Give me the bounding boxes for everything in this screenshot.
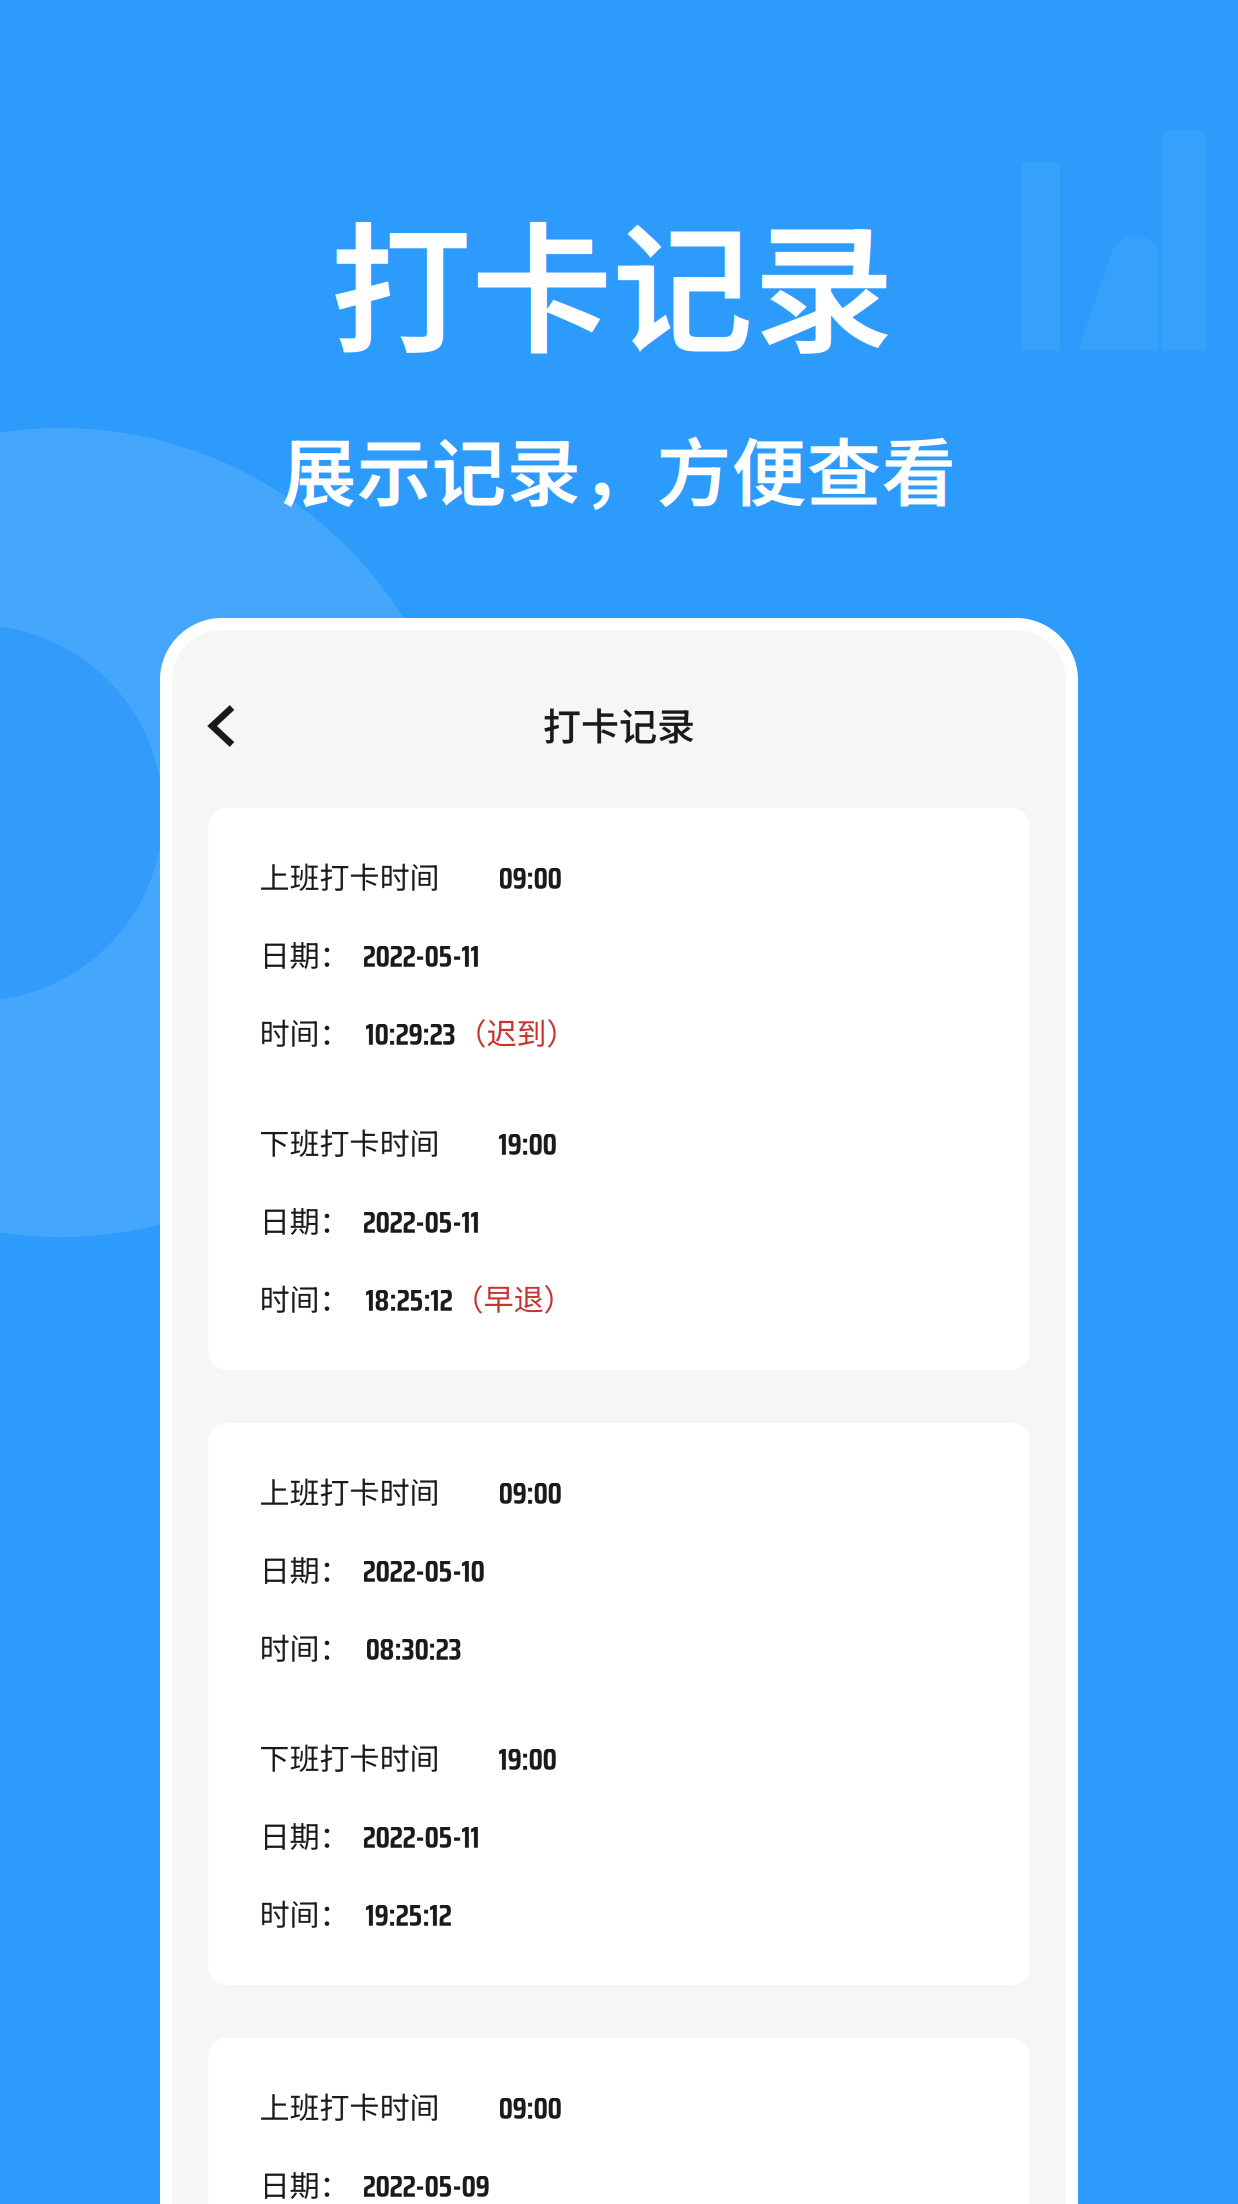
button[interactable]: 上班打卡时间 [208, 1423, 1029, 1985]
staticText: 2022-05-11 [362, 1199, 479, 1246]
staticText: 19:25:12 [365, 1892, 451, 1939]
staticText: 10:29:23 [365, 1011, 455, 1058]
staticText: 下班打卡时间 [259, 1735, 439, 1778]
staticText: （迟到） [456, 1010, 576, 1053]
staticText: 2022-05-11 [362, 933, 479, 980]
staticText: 日期： [259, 932, 349, 975]
staticText: 上班打卡时间 [259, 2084, 439, 2127]
staticText: 2022-05-09 [362, 2163, 489, 2204]
staticText: 日期： [259, 1813, 349, 1856]
staticText: 上班打卡时间 [259, 854, 439, 897]
staticText: 08:30:23 [365, 1626, 461, 1673]
staticText: 日期： [259, 1198, 349, 1241]
staticText: 时间： [259, 1276, 349, 1319]
staticText: 19:00 [498, 1736, 556, 1783]
staticText: 2022-05-11 [362, 1814, 479, 1861]
staticText: 打卡记录 [330, 178, 894, 382]
button[interactable]: 上班打卡时间 [208, 808, 1029, 1370]
staticText: 下班打卡时间 [259, 1120, 439, 1163]
staticText: 展示记录，方便查看 [281, 414, 956, 522]
staticText: 时间： [259, 1625, 349, 1668]
staticText: 时间： [259, 1010, 349, 1053]
staticText: 18:25:12 [365, 1277, 452, 1324]
staticText: 09:00 [498, 2085, 561, 2132]
button[interactable]: 返回 [179, 686, 265, 766]
staticText: 19:00 [498, 1121, 556, 1168]
staticText: 上班打卡时间 [259, 1469, 439, 1512]
staticText: 日期： [259, 1547, 349, 1590]
staticText: 09:00 [498, 1470, 561, 1517]
staticText: 时间： [259, 1891, 349, 1934]
staticText: 打卡记录 [543, 696, 695, 751]
staticText: 2022-05-10 [362, 1548, 484, 1595]
staticText: （早退） [453, 1276, 573, 1319]
staticText: 日期： [259, 2162, 349, 2204]
staticText: 09:00 [498, 855, 561, 902]
button[interactable]: 上班打卡时间 [208, 2038, 1029, 2204]
